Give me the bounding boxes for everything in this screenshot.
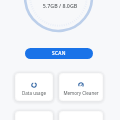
staticText: Data usage xyxy=(15,90,53,96)
staticText: Memory Cleaner xyxy=(59,90,103,96)
button[interactable]: Memory Cleaner xyxy=(59,73,103,101)
button[interactable]: SCAN xyxy=(25,48,93,59)
staticText: SCAN xyxy=(52,50,66,57)
button[interactable]: Data usage xyxy=(15,73,53,101)
staticText: 5.7GB / 8.0GB xyxy=(0,2,120,9)
